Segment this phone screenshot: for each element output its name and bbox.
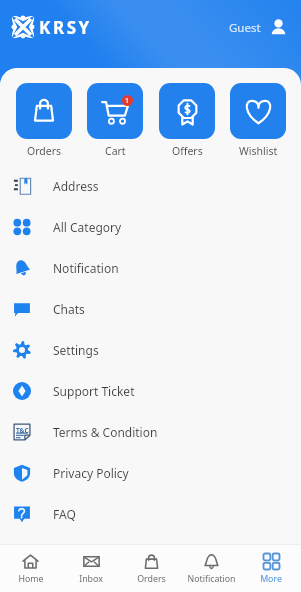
staticText: Cart [105, 144, 126, 158]
staticText: KRSY [39, 16, 92, 39]
button[interactable]: T&C [0, 411, 301, 452]
button[interactable]: Wishlist [230, 83, 286, 158]
staticText: T&C [16, 426, 29, 435]
staticText: Notification [187, 573, 236, 585]
staticText: Guest [229, 20, 261, 36]
button[interactable]: Notification [0, 247, 301, 288]
button[interactable]: FAQ [0, 493, 301, 534]
button[interactable]: Offers [159, 83, 215, 158]
button[interactable]: More [241, 549, 301, 589]
staticText: Notification [53, 260, 119, 276]
button[interactable]: Notification [181, 549, 241, 589]
staticText: Terms & Condition [53, 424, 158, 440]
button[interactable]: Orders [16, 83, 72, 158]
staticText: 1 [125, 96, 130, 106]
button[interactable]: 1 [87, 83, 143, 158]
staticText: More [260, 573, 282, 585]
button[interactable]: Privacy Policy [0, 452, 301, 493]
other: Profile [270, 19, 287, 36]
button[interactable]: Support Ticket [0, 370, 301, 411]
staticText: Orders [27, 144, 62, 158]
staticText: Settings [53, 342, 99, 358]
staticText: All Category [53, 219, 122, 235]
staticText: Privacy Policy [53, 465, 129, 481]
button[interactable]: All Category [0, 206, 301, 247]
staticText: Wishlist [239, 144, 278, 158]
staticText: FAQ [53, 506, 76, 522]
button[interactable]: Guest [227, 15, 289, 40]
staticText: Address [53, 178, 99, 194]
button[interactable]: Chats [0, 288, 301, 329]
staticText: Home [18, 573, 44, 585]
staticText: Inbox [79, 573, 103, 585]
staticText: Orders [137, 573, 166, 585]
button[interactable]: Address [0, 165, 301, 206]
staticText: Chats [53, 301, 85, 317]
button[interactable]: Orders [121, 549, 181, 589]
button[interactable]: Settings [0, 329, 301, 370]
staticText: Offers [172, 144, 203, 158]
button[interactable]: Home [0, 549, 61, 589]
other: KRSY logo [11, 15, 35, 39]
staticText: Support Ticket [53, 383, 135, 399]
button[interactable]: Inbox [61, 549, 121, 589]
